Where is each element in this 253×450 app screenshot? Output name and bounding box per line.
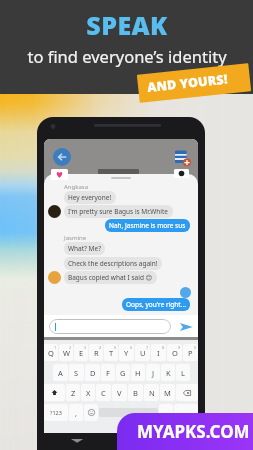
- button[interactable]: I'm pretty sure Bagus is Mr.White: [64, 205, 173, 218]
- staticText: K: [166, 368, 171, 378]
- staticText: Oops, you're right...: [126, 300, 186, 309]
- button[interactable]: Z: [66, 384, 80, 401]
- button[interactable]: [176, 384, 198, 401]
- button[interactable]: X: [81, 384, 95, 401]
- button[interactable]: A: [53, 364, 68, 381]
- staticText: 1: [54, 345, 57, 350]
- button[interactable]: Y: [119, 344, 134, 361]
- button[interactable]: C: [96, 384, 111, 401]
- staticText: .: [165, 408, 168, 418]
- button[interactable]: O: [167, 344, 182, 361]
- button[interactable]: N: [144, 384, 159, 401]
- button[interactable]: K: [161, 364, 175, 381]
- button[interactable]: S: [69, 364, 84, 381]
- button[interactable]: MYAPKS.COM: [117, 413, 253, 450]
- staticText: Check the descriptions again!: [68, 259, 158, 268]
- staticText: S: [74, 368, 79, 378]
- staticText: W: [63, 348, 70, 358]
- staticText: X: [86, 388, 91, 398]
- staticText: R: [94, 348, 99, 358]
- staticText: Angkasa: [64, 183, 89, 191]
- staticText: A: [58, 368, 63, 378]
- staticText: Q: [48, 348, 54, 358]
- staticText: MYAPKS.COM: [137, 420, 250, 443]
- staticText: Y: [124, 348, 129, 358]
- staticText: F: [106, 368, 110, 378]
- staticText: ?123: [50, 409, 62, 416]
- button[interactable]: Cards: [173, 149, 193, 169]
- staticText: I: [157, 348, 160, 358]
- button[interactable]: V: [112, 384, 127, 401]
- staticText: B: [133, 388, 138, 398]
- button[interactable]: [49, 319, 171, 334]
- button[interactable]: [44, 384, 65, 401]
- staticText: 5: [114, 345, 117, 350]
- staticText: to find everyone’s identity: [27, 45, 227, 67]
- staticText: Jasmine: [64, 234, 87, 242]
- staticText: P: [188, 348, 193, 358]
- button[interactable]: Back: [53, 148, 71, 166]
- staticText: 3: [84, 345, 87, 350]
- button[interactable]: M: [160, 384, 175, 401]
- button[interactable]: T: [104, 344, 118, 361]
- staticText: 8: [162, 345, 165, 350]
- staticText: Nah, Jasmine is more sus: [109, 221, 186, 230]
- staticText: M: [164, 388, 171, 398]
- staticText: 4: [99, 345, 102, 350]
- button[interactable]: W: [59, 344, 73, 361]
- staticText: 2: [69, 345, 72, 350]
- button[interactable]: B: [128, 384, 143, 401]
- button[interactable]: .: [159, 404, 173, 421]
- staticText: 9: [178, 345, 181, 350]
- button[interactable]: J: [146, 364, 160, 381]
- button[interactable]: E: [74, 344, 88, 361]
- staticText: G: [120, 368, 126, 378]
- staticText: T: [109, 348, 114, 358]
- staticText: E: [79, 348, 84, 358]
- button[interactable]: Oops, you're right...: [122, 298, 190, 311]
- button[interactable]: What? Me?: [64, 242, 105, 255]
- button[interactable]: [84, 404, 98, 421]
- staticText: L: [181, 368, 185, 378]
- button[interactable]: Q: [44, 344, 58, 361]
- staticText: I'm pretty sure Bagus is Mr.White: [68, 207, 169, 216]
- button[interactable]: F: [101, 364, 115, 381]
- staticText: Bagus copied what I said 😊: [68, 273, 153, 282]
- button[interactable]: [99, 408, 158, 417]
- staticText: D: [90, 368, 96, 378]
- staticText: ,: [75, 408, 78, 418]
- staticText: V: [117, 388, 122, 398]
- staticText: J: [152, 368, 155, 378]
- button[interactable]: L: [176, 364, 190, 381]
- button[interactable]: [174, 404, 198, 421]
- button[interactable]: Send: [178, 319, 194, 335]
- staticText: U: [140, 348, 146, 358]
- button[interactable]: G: [116, 364, 130, 381]
- button[interactable]: Nah, Jasmine is more sus: [105, 219, 190, 232]
- button[interactable]: P: [183, 344, 198, 361]
- button[interactable]: I: [151, 344, 166, 361]
- staticText: C: [101, 388, 106, 398]
- staticText: SPEAK: [86, 8, 168, 42]
- button[interactable]: U: [135, 344, 150, 361]
- button[interactable]: ,: [69, 404, 83, 421]
- staticText: H: [135, 368, 141, 378]
- staticText: N: [149, 388, 155, 398]
- button[interactable]: D: [85, 364, 100, 381]
- staticText: What? Me?: [68, 244, 101, 253]
- staticText: 6: [130, 345, 133, 350]
- button[interactable]: Bagus copied what I said 😊: [64, 271, 157, 284]
- staticText: 0: [194, 345, 197, 350]
- button[interactable]: Check the descriptions again!: [64, 257, 162, 270]
- button[interactable]: ?123: [44, 404, 68, 421]
- button[interactable]: Hey everyone!: [64, 191, 116, 204]
- button[interactable]: R: [89, 344, 103, 361]
- staticText: Z: [71, 388, 76, 398]
- staticText: AND YOURS!: [146, 70, 229, 96]
- staticText: 7: [146, 345, 149, 350]
- staticText: O: [172, 348, 178, 358]
- staticText: Hey everyone!: [68, 193, 112, 202]
- button[interactable]: H: [131, 364, 145, 381]
